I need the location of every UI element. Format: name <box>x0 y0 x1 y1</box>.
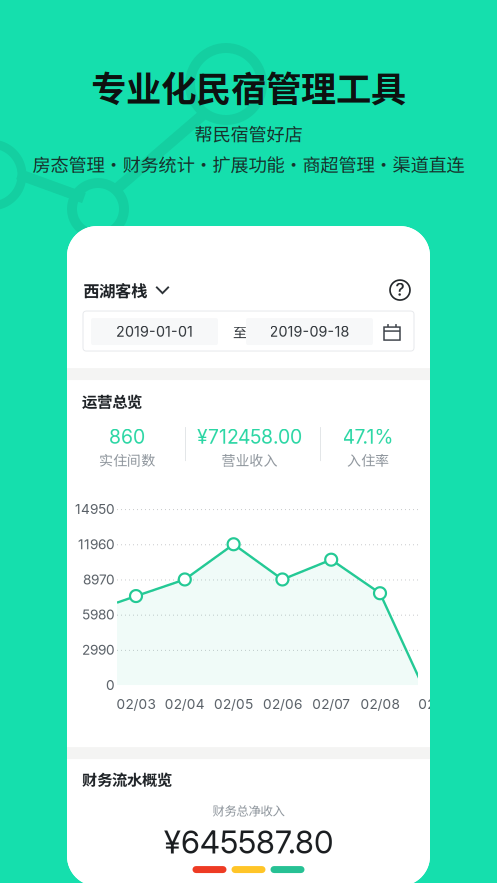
staticText: 入住率 <box>347 449 389 470</box>
staticText: 2990 <box>82 642 115 658</box>
staticText: 860 <box>109 425 145 448</box>
button[interactable]: 2019-01-01 <box>83 311 414 351</box>
staticText: 财务总净收入 <box>212 801 284 819</box>
staticText: 运营总览 <box>82 390 142 412</box>
staticText: 02/06 <box>263 696 302 712</box>
staticText: 房态管理·财务统计·扩展功能·商超管理·渠道直连 <box>32 151 464 177</box>
staticText: 11960 <box>78 536 115 552</box>
staticText: ¥712458.00 <box>197 425 302 448</box>
staticText: 02/07 <box>312 696 350 712</box>
button[interactable]: 西湖客栈 <box>83 278 203 302</box>
staticText: 02/03 <box>116 696 155 712</box>
staticText: 02: <box>418 696 439 712</box>
staticText: 5980 <box>82 606 115 623</box>
staticText: 47.1% <box>342 425 393 448</box>
staticText: 8970 <box>83 571 115 588</box>
staticText: 至 <box>233 321 247 342</box>
staticText: 2019-01-01 <box>116 323 193 340</box>
staticText: 西湖客栈 <box>83 278 147 302</box>
staticText: 02/04 <box>165 696 205 712</box>
staticText: 专业化民宿管理工具 <box>91 61 406 112</box>
staticText: 帮民宿管好店 <box>194 120 302 147</box>
staticText: 14950 <box>75 501 115 517</box>
staticText: ¥645587.80 <box>164 823 333 861</box>
staticText: 02/08 <box>360 696 399 712</box>
staticText: ? <box>395 279 404 300</box>
staticText: 实住间数 <box>99 449 155 470</box>
staticText: 0 <box>106 677 115 693</box>
staticText: 财务流水概览 <box>82 768 172 790</box>
staticText: 02/05 <box>214 696 253 712</box>
staticText: 营业收入 <box>221 449 277 470</box>
button[interactable]: Help <box>389 279 411 301</box>
staticText: 2019-09-18 <box>269 323 349 340</box>
